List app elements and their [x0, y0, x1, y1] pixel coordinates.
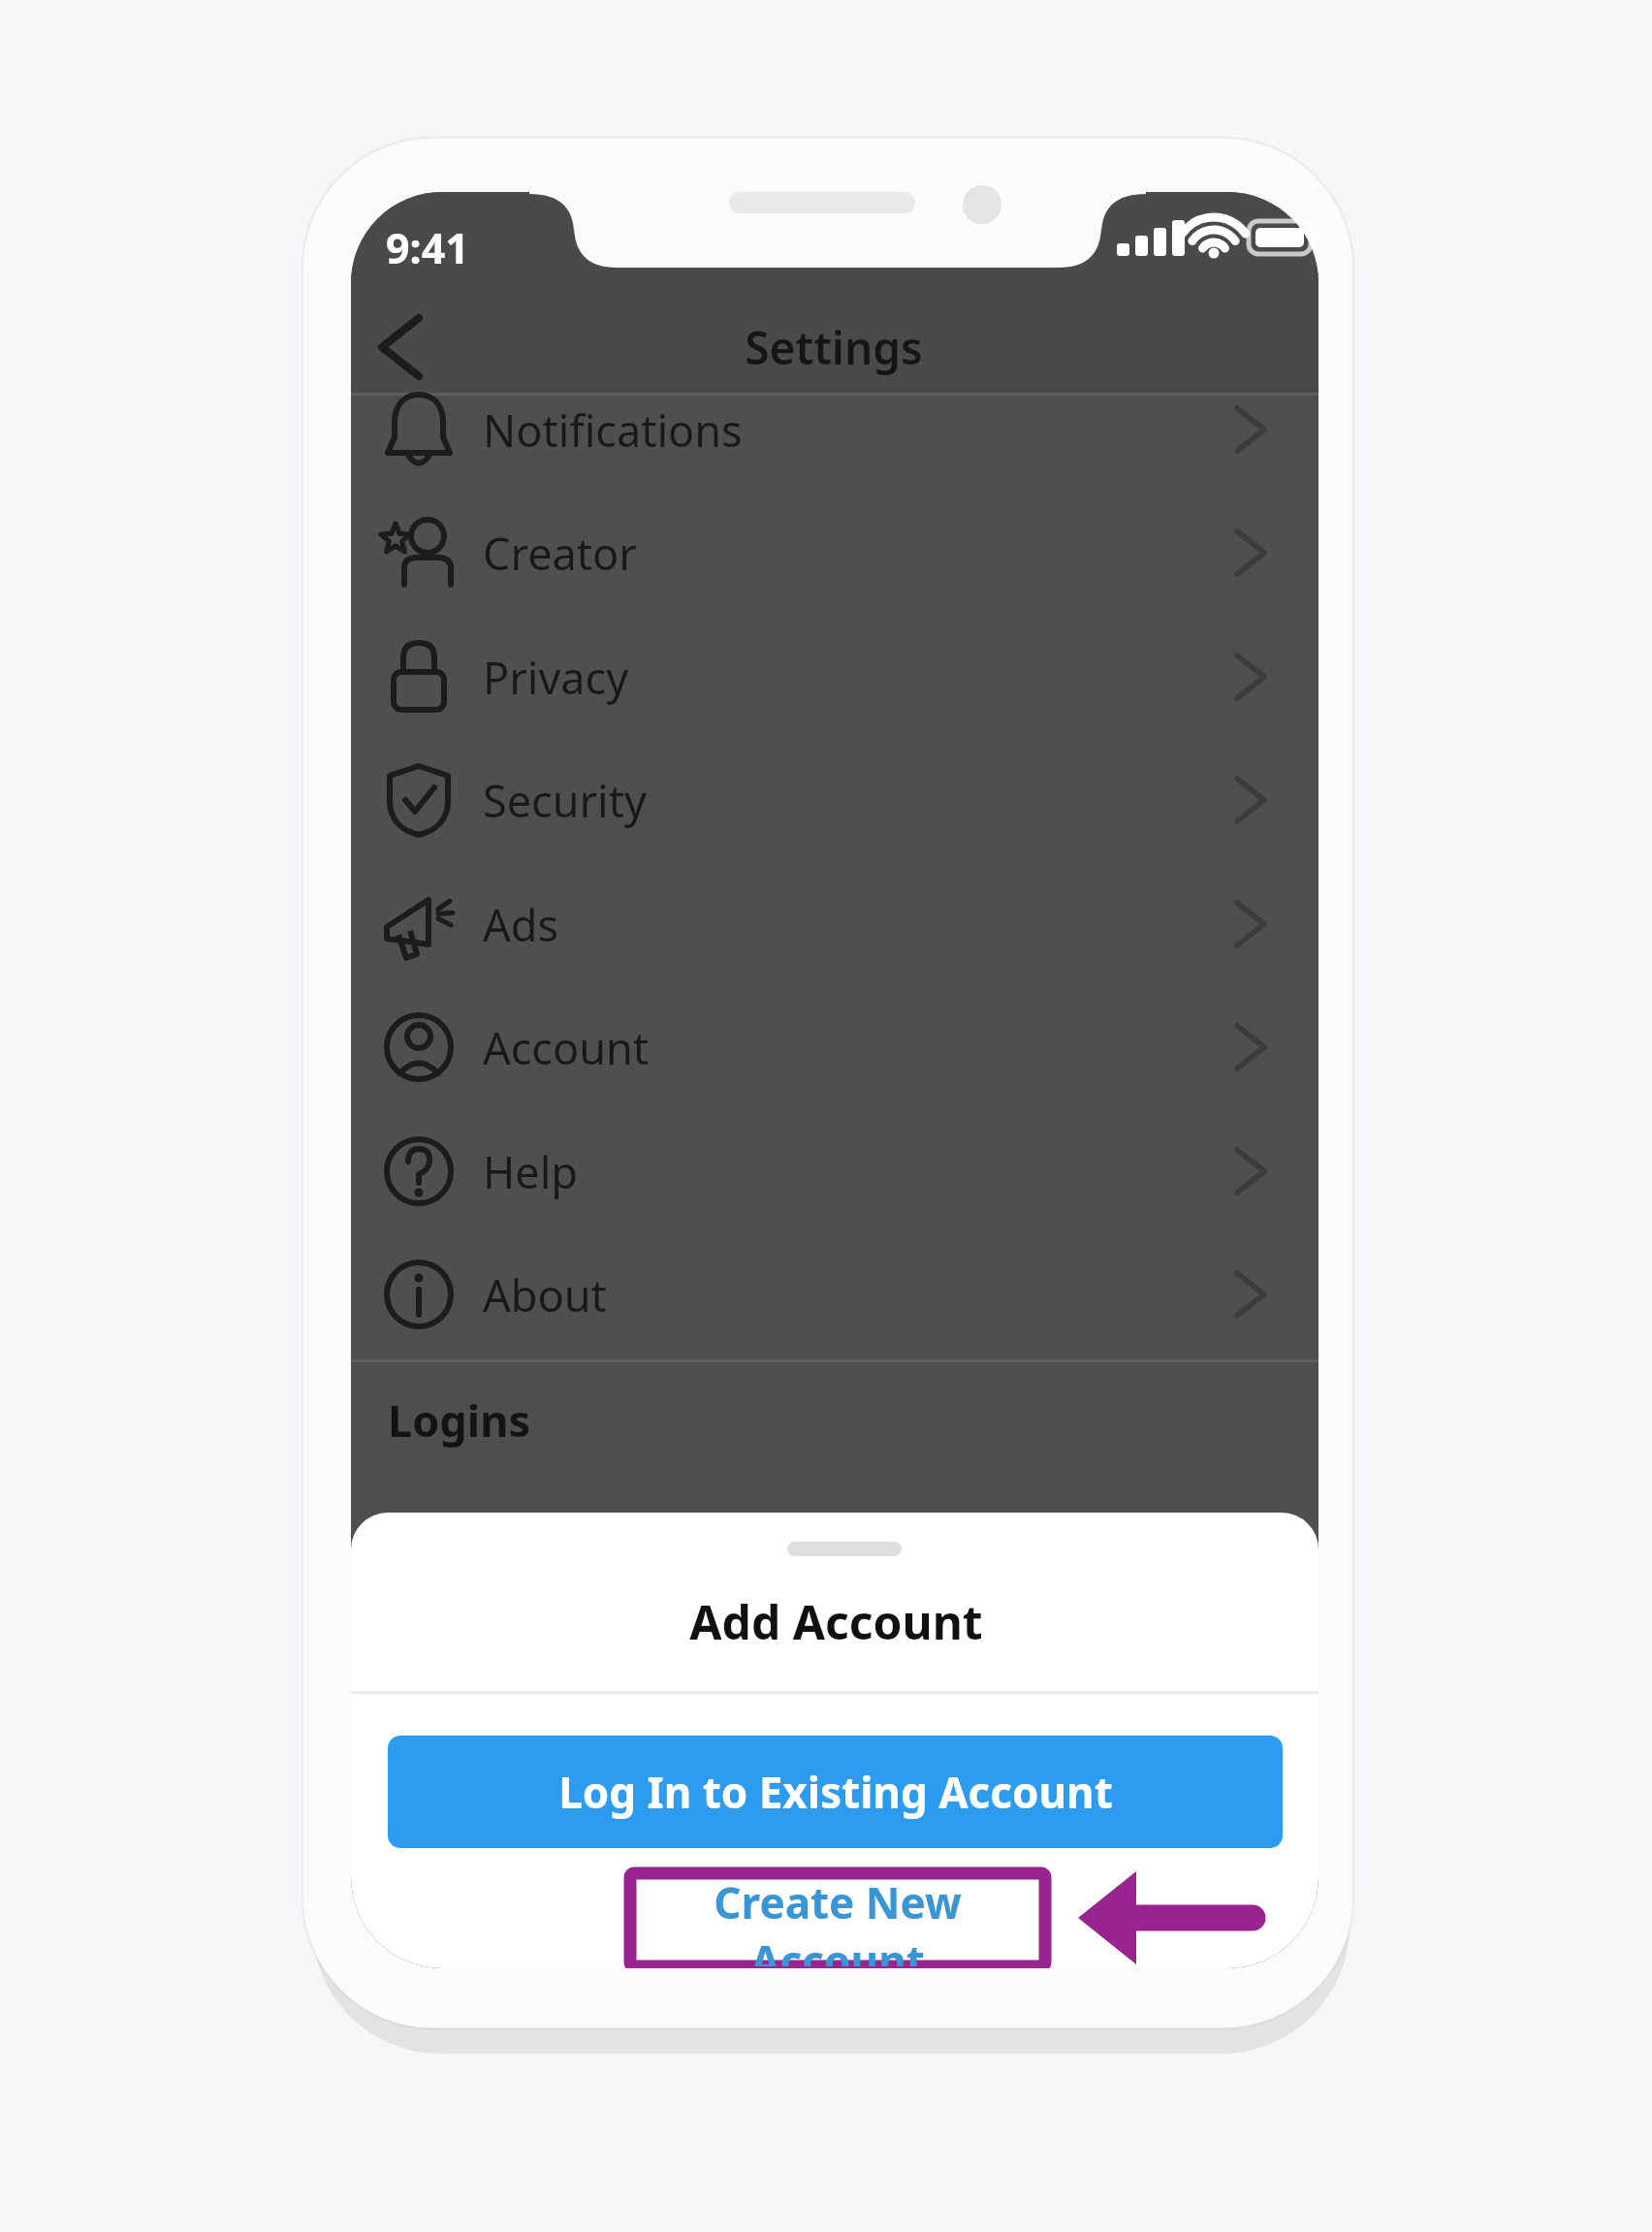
- staticText: Notifications: [483, 400, 743, 460]
- staticText: Logins: [388, 1390, 531, 1450]
- staticText: Add Account: [689, 1590, 983, 1653]
- button[interactable]: Log In to Existing Account: [388, 1736, 1283, 1848]
- staticText: Create New Account: [630, 1873, 1045, 1966]
- button[interactable]: Back: [361, 295, 458, 398]
- staticText: Help: [483, 1142, 579, 1201]
- staticText: Security: [483, 771, 647, 830]
- button[interactable]: Creator: [351, 493, 1318, 613]
- button[interactable]: Security: [351, 740, 1318, 860]
- staticText: Account: [483, 1018, 650, 1077]
- button[interactable]: Ads: [351, 864, 1318, 984]
- button[interactable]: Account: [351, 987, 1318, 1107]
- staticText: Privacy: [483, 648, 629, 707]
- staticText: Creator: [483, 524, 637, 583]
- staticText: 9:41: [386, 219, 469, 276]
- staticText: About: [483, 1265, 607, 1324]
- button[interactable]: Notifications: [351, 369, 1318, 490]
- button[interactable]: Help: [351, 1111, 1318, 1231]
- staticText: Ads: [483, 895, 558, 954]
- button[interactable]: Create New Account: [630, 1873, 1045, 1966]
- button[interactable]: Privacy: [351, 617, 1318, 737]
- button[interactable]: About: [351, 1234, 1318, 1355]
- staticText: Log In to Existing Account: [558, 1763, 1113, 1821]
- staticText: Settings: [745, 317, 923, 378]
